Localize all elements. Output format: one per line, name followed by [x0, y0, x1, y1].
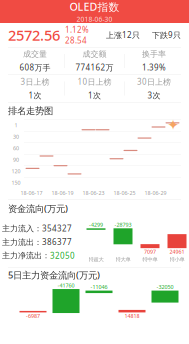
staticText: 18-06-25 [113, 189, 135, 197]
staticText: 成交量 [23, 49, 47, 59]
staticText: -28793 [114, 221, 131, 228]
staticText: 资金流向(万元) [8, 202, 68, 215]
staticText: 1 [14, 122, 17, 129]
staticText: -41760 [57, 282, 74, 289]
staticText: 2572.56 [8, 25, 60, 45]
staticText: 排名走势图 [8, 105, 53, 117]
staticText: 60 [13, 145, 19, 152]
staticText: 32050 [50, 250, 75, 261]
staticText: 28.54 [65, 35, 87, 46]
staticText: 7097 [144, 248, 156, 255]
staticText: -4299 [89, 221, 103, 228]
staticText: 774162万 [75, 62, 113, 73]
staticText: 下跌9只 [152, 30, 181, 40]
staticText: 18-06-19 [51, 189, 73, 197]
staticText: 608万手 [19, 62, 50, 73]
staticText: 主力流入：354327 [2, 223, 72, 234]
staticText: 主力净流出： [2, 251, 50, 260]
staticText: 主力流出：386377 [2, 237, 72, 247]
staticText: 18-06-17 [20, 189, 42, 197]
staticText: 3次 [147, 90, 160, 101]
staticText: 5日主力资金流向(万元) [8, 269, 100, 281]
staticText: 特小单 [169, 256, 184, 263]
staticText: 10日上榜 [77, 76, 111, 87]
staticText: 特超大 [88, 256, 103, 263]
staticText: 24961 [169, 248, 184, 255]
staticText: 1.39% [142, 62, 166, 73]
staticText: -32050 [156, 283, 173, 291]
staticText: 特大单 [115, 256, 130, 263]
staticText: -6987 [26, 312, 40, 319]
staticText: 换手率 [142, 49, 166, 59]
staticText: 2018-06-30 [76, 15, 112, 24]
staticText: 120 [11, 168, 20, 175]
staticText: 特中单 [142, 256, 157, 263]
staticText: ✦ [167, 117, 179, 133]
staticText: 90 [13, 156, 19, 163]
staticText: 3日上榜 [20, 76, 49, 87]
staticText: 1次 [28, 90, 41, 101]
staticText: 30日上榜 [137, 76, 171, 87]
staticText: 1次 [88, 90, 101, 101]
staticText: 30 [13, 133, 19, 140]
staticText: 150 [11, 179, 20, 186]
staticText: 1.12% [65, 24, 89, 35]
staticText: 18-06-23 [82, 189, 104, 197]
staticText: -11046 [90, 283, 107, 291]
staticText: OLED指数 [69, 0, 119, 14]
staticText: 成交额 [82, 49, 106, 59]
button[interactable]: OLED指数 [0, 0, 189, 23]
staticText: 上涨12只 [106, 30, 140, 40]
staticText: 14818 [124, 312, 139, 319]
staticText: 18-06-29 [144, 189, 166, 197]
